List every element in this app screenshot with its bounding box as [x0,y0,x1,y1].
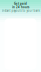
staticText: Instant payouts to your bank [1,9,39,12]
staticText: in 24 hours [12,5,29,9]
staticText: Get paid [14,2,27,5]
